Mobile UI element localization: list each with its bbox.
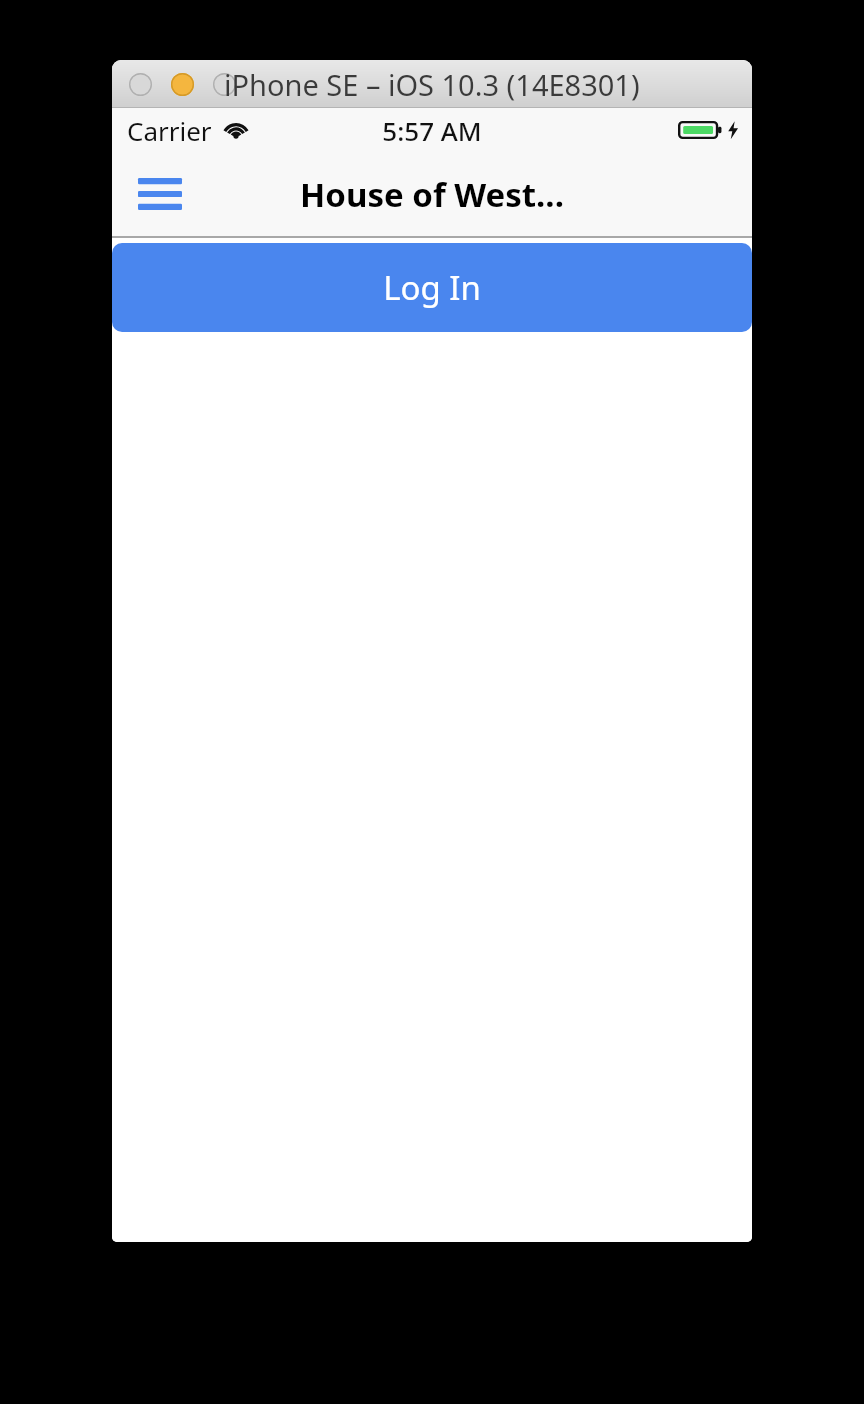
button[interactable]: Close — [129, 73, 152, 96]
button[interactable]: Minimize — [171, 73, 194, 96]
staticText: 5:57 AM — [382, 113, 482, 148]
button[interactable]: Zoom — [213, 73, 236, 96]
staticText: iPhone SE – iOS 10.3 (14E8301) — [224, 65, 640, 104]
staticText: Carrier — [127, 113, 212, 148]
staticText: Log In — [383, 265, 481, 310]
button[interactable]: Menu — [135, 169, 185, 219]
button[interactable]: Log In — [112, 243, 752, 332]
staticText: House of West... — [300, 172, 564, 217]
